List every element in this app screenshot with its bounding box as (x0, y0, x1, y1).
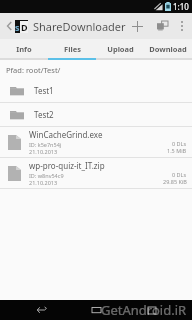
staticText: 29.85 KiB (163, 178, 187, 185)
button[interactable]: Test2 (0, 103, 192, 126)
staticText: ShareDownloader (33, 19, 126, 34)
button[interactable]: WinCacheGrind.exe (0, 127, 192, 157)
staticText: Info (16, 44, 32, 54)
staticText: 0 DLs (172, 140, 187, 147)
button[interactable]: Back (26, 300, 56, 320)
button[interactable]: Files (48, 39, 96, 58)
staticText: Pfad: root/Test/ (6, 65, 61, 75)
staticText: D (21, 21, 27, 33)
staticText: Test2 (34, 109, 54, 120)
button[interactable]: More options (175, 15, 188, 37)
button[interactable]: Add (126, 15, 148, 37)
staticText: WinCacheGrind.exe (29, 129, 103, 140)
staticText: ID: k5e7n54j (29, 141, 62, 148)
staticText: GetAndroid.iR (101, 301, 187, 319)
button[interactable]: Test1 (0, 79, 192, 102)
staticText: 0 DLs (172, 171, 187, 178)
button[interactable]: wp-pro-quiz-it_IT.zip (0, 158, 192, 188)
button[interactable]: Recents (137, 300, 167, 320)
button[interactable]: Info (0, 39, 48, 58)
staticText: Download (149, 44, 187, 54)
staticText: 21.10.2013 (29, 179, 58, 186)
staticText: 1.5 MiB (167, 147, 187, 154)
button[interactable]: Upload (96, 39, 144, 58)
staticText: Files (64, 44, 81, 54)
button[interactable]: Navigate up (4, 15, 14, 37)
staticText: Test1 (34, 85, 54, 96)
staticText: wp-pro-quiz-it_IT.zip (29, 160, 105, 171)
staticText: 21.10.2013 (29, 148, 58, 155)
staticText: ID: w8nv54c9 (29, 172, 64, 179)
button[interactable]: Download (144, 39, 192, 58)
button[interactable]: Home (81, 300, 111, 320)
staticText: 1:10 (173, 1, 189, 12)
staticText: s (15, 21, 20, 33)
staticText: Upload (107, 44, 134, 54)
button[interactable]: Devices (151, 15, 173, 37)
